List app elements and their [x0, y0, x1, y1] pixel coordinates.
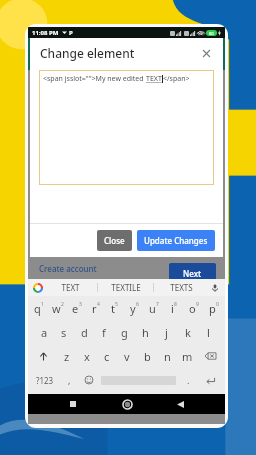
- staticText: c: [104, 349, 110, 364]
- staticText: o: [189, 301, 196, 316]
- button[interactable]: ,: [60, 368, 79, 392]
- staticText: x: [84, 349, 90, 364]
- button[interactable]: j: [156, 320, 177, 344]
- button[interactable]: b: [137, 344, 157, 368]
- staticText: j: [165, 325, 168, 340]
- button[interactable]: a: [34, 320, 54, 344]
- button[interactable]: z: [57, 344, 77, 368]
- button[interactable]: y: [124, 296, 144, 320]
- button[interactable]: q: [29, 296, 48, 320]
- staticText: ?123: [36, 375, 54, 386]
- staticText: ,: [68, 374, 71, 386]
- button[interactable]: ?123: [30, 368, 60, 392]
- button[interactable]: k: [177, 320, 198, 344]
- button[interactable]: Create account: [37, 261, 99, 276]
- staticText: d: [81, 325, 88, 340]
- button[interactable]: i: [164, 296, 184, 320]
- staticText: i: [171, 301, 174, 316]
- staticText: z: [64, 349, 70, 364]
- staticText: Create account: [39, 263, 97, 274]
- staticText: 7: [156, 301, 159, 308]
- staticText: r: [92, 301, 97, 316]
- staticText: a: [41, 325, 48, 340]
- staticText: P: [69, 29, 73, 37]
- staticText: f: [102, 325, 106, 340]
- button[interactable]: s: [54, 320, 74, 344]
- button[interactable]: n: [157, 344, 177, 368]
- staticText: </span>: [163, 74, 190, 84]
- button[interactable]: TEXTS: [154, 279, 209, 296]
- button[interactable]: Close: [97, 230, 132, 251]
- button[interactable]: u: [144, 296, 164, 320]
- staticText: 6: [136, 301, 139, 308]
- staticText: 1: [41, 301, 44, 308]
- staticText: TEXTS: [170, 282, 193, 293]
- button[interactable]: Back: [171, 395, 189, 413]
- button[interactable]: p: [204, 296, 224, 320]
- button[interactable]: Update Changes: [137, 230, 215, 251]
- button[interactable]: Home: [118, 395, 136, 413]
- button[interactable]: r: [86, 296, 105, 320]
- staticText: Next: [183, 268, 202, 279]
- staticText: 8: [174, 301, 177, 308]
- staticText: 80: [209, 31, 214, 36]
- staticText: <span jsslot="">My new edited: [43, 74, 146, 84]
- staticText: s: [61, 325, 67, 340]
- staticText: 9: [196, 301, 199, 308]
- button[interactable]: Voice input: [209, 282, 220, 293]
- staticText: 11:08 PM: [32, 29, 59, 37]
- staticText: l: [207, 325, 210, 340]
- staticText: Close: [104, 235, 125, 246]
- button[interactable]: m: [177, 344, 197, 368]
- staticText: 3: [79, 301, 82, 308]
- staticText: TEXTILE: [111, 282, 141, 293]
- button[interactable]: o: [184, 296, 204, 320]
- staticText: m: [182, 349, 193, 364]
- button[interactable]: h: [135, 320, 156, 344]
- button[interactable]: c: [97, 344, 117, 368]
- staticText: e: [72, 301, 79, 316]
- button[interactable]: d: [74, 320, 94, 344]
- staticText: TEXT: [61, 282, 80, 293]
- button[interactable]: TEXTILE: [98, 279, 153, 296]
- staticText: y: [130, 301, 136, 316]
- button[interactable]: <span jsslot="">My new edited: [39, 70, 214, 185]
- staticText: Change element: [40, 45, 135, 61]
- staticText: 2: [61, 301, 64, 308]
- button[interactable]: Backspace: [197, 344, 223, 368]
- button[interactable]: Shift: [30, 344, 57, 368]
- button[interactable]: Emoji: [79, 368, 98, 392]
- staticText: 4: [97, 301, 100, 308]
- button[interactable]: t: [105, 296, 124, 320]
- staticText: n: [164, 349, 171, 364]
- staticText: u: [149, 301, 156, 316]
- staticText: q: [34, 301, 41, 316]
- button[interactable]: v: [117, 344, 137, 368]
- button[interactable]: l: [198, 320, 219, 344]
- staticText: w: [52, 301, 61, 316]
- staticText: TEXT: [146, 74, 162, 84]
- button[interactable]: Close dialog: [199, 46, 213, 60]
- staticText: g: [121, 325, 128, 340]
- staticText: .: [187, 374, 190, 386]
- staticText: h: [142, 325, 149, 340]
- button[interactable]: w: [48, 296, 67, 320]
- button[interactable]: g: [114, 320, 135, 344]
- staticText: Update Changes: [144, 235, 208, 246]
- button[interactable]: x: [77, 344, 97, 368]
- staticText: b: [144, 349, 151, 364]
- button[interactable]: Google: [32, 282, 43, 293]
- staticText: p: [209, 301, 216, 316]
- button[interactable]: .: [179, 368, 198, 392]
- staticText: 0: [216, 301, 219, 308]
- staticText: 5: [115, 301, 118, 308]
- staticText: v: [124, 349, 130, 364]
- staticText: k: [185, 325, 191, 340]
- button[interactable]: Enter: [198, 368, 223, 392]
- button[interactable]: Next: [169, 263, 216, 284]
- button[interactable]: Recent apps: [64, 395, 82, 413]
- button[interactable]: TEXT: [43, 279, 97, 296]
- button[interactable]: f: [94, 320, 114, 344]
- button[interactable]: e: [67, 296, 86, 320]
